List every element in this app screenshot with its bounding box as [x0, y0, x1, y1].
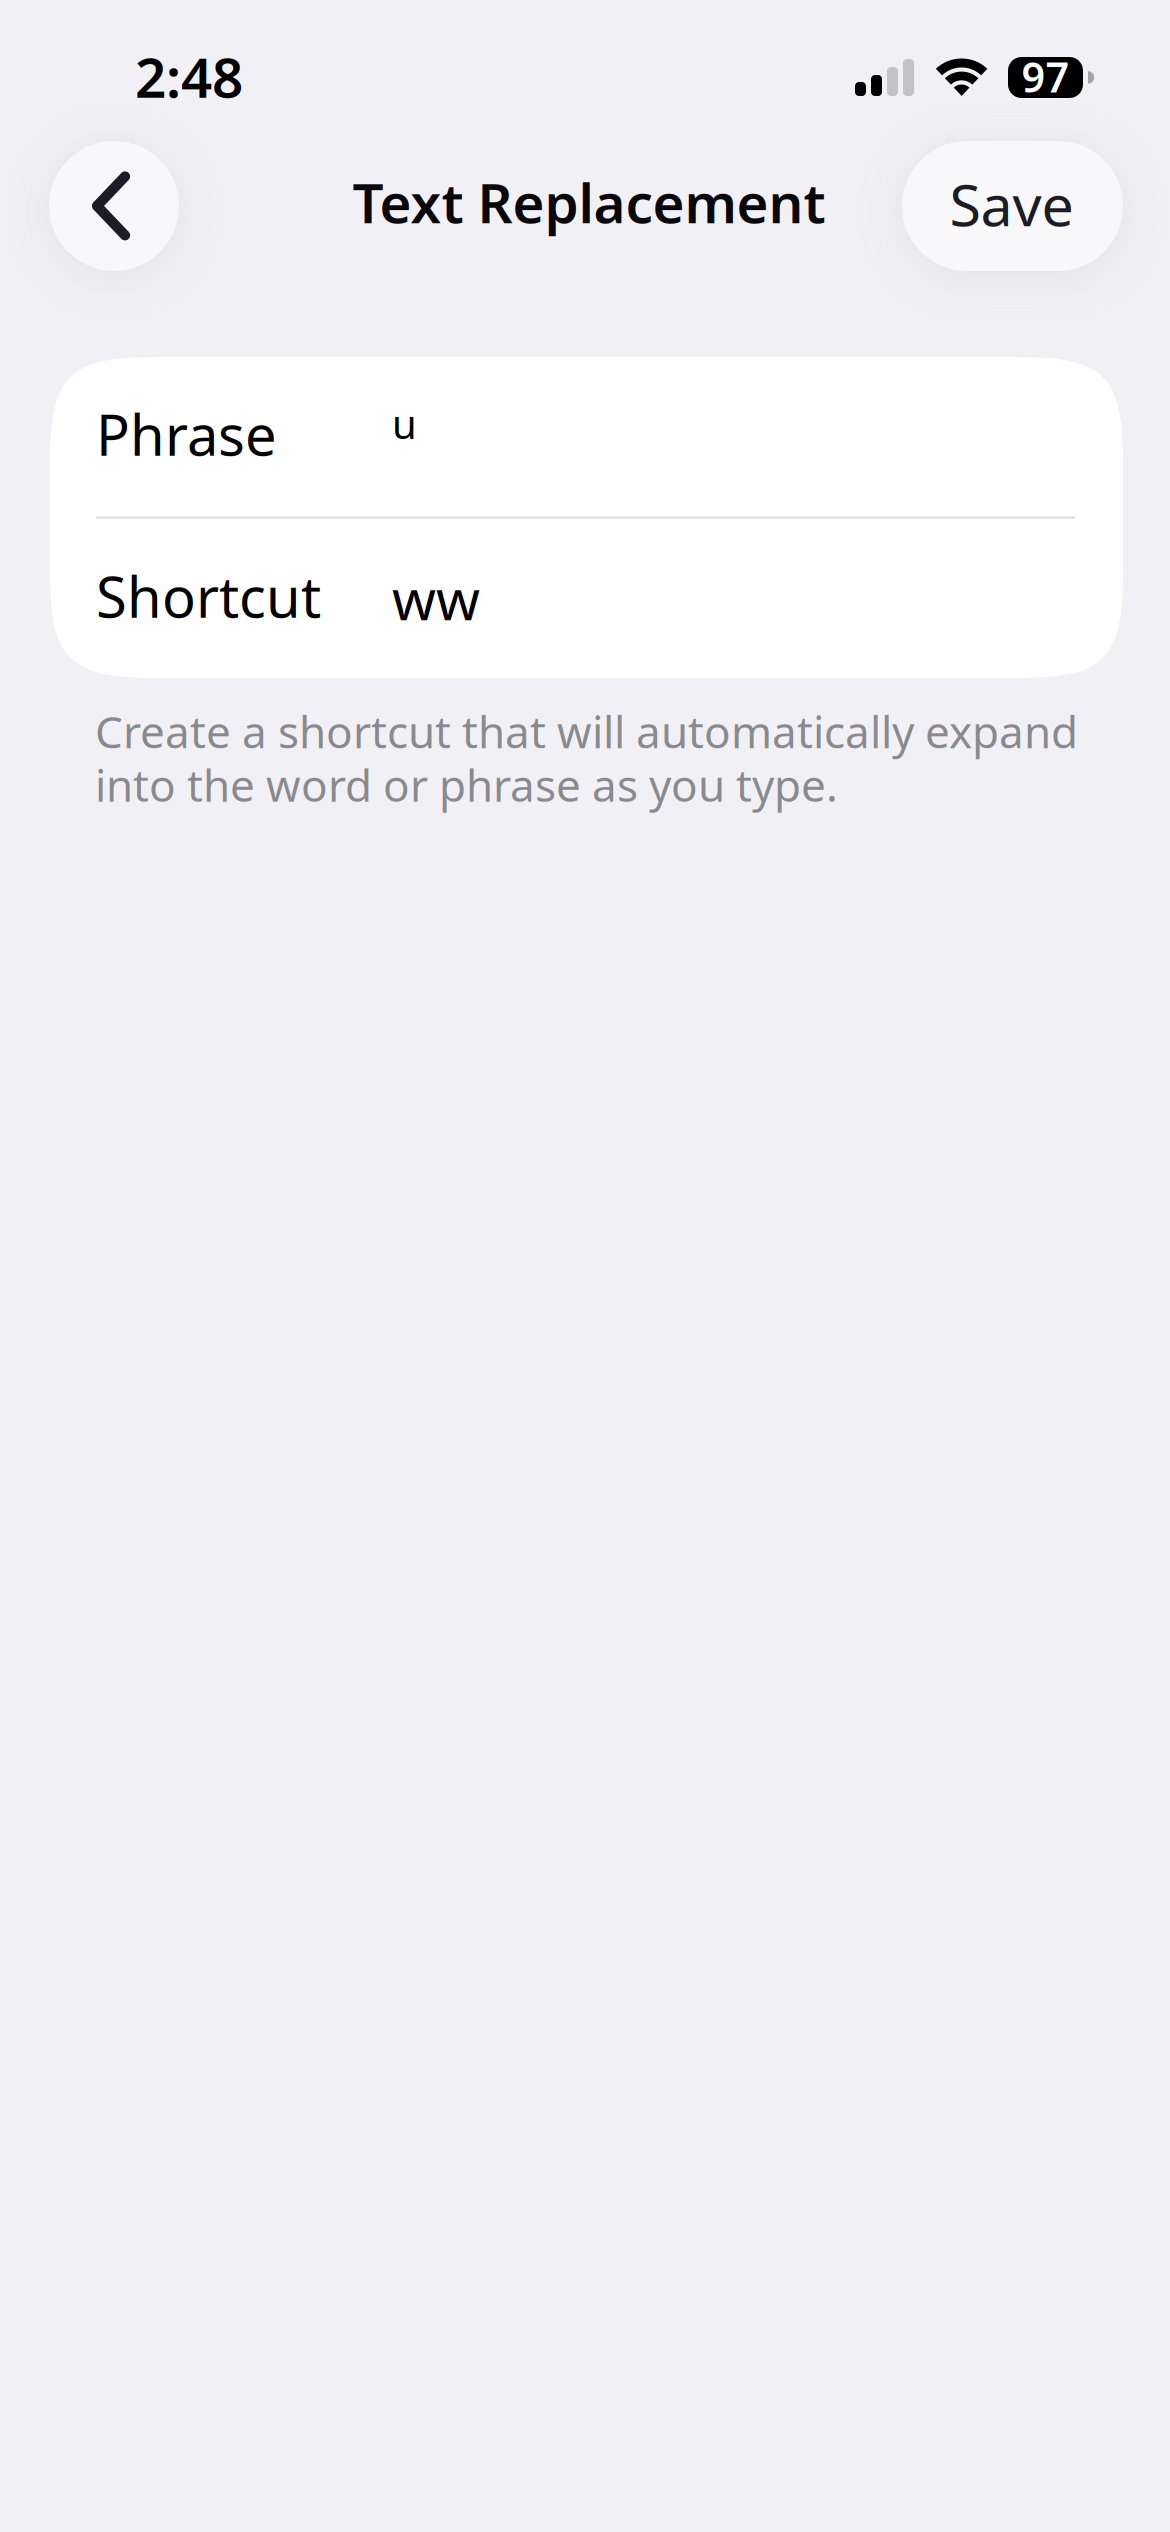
button[interactable]: Back: [49, 141, 179, 271]
button[interactable]: Phrase: [50, 357, 1123, 516]
staticText: Text Replacement: [352, 166, 825, 238]
staticText: 2:48: [135, 40, 243, 113]
staticText: Create a shortcut that will automaticall…: [95, 702, 1078, 760]
button[interactable]: Shortcut: [50, 519, 1123, 678]
staticText: into the word or phrase as you type.: [95, 755, 838, 814]
staticText: 97: [1021, 49, 1069, 104]
button[interactable]: Save: [902, 141, 1123, 271]
staticText: Shortcut: [96, 559, 321, 633]
staticText: Save: [949, 166, 1073, 242]
staticText: ww: [392, 561, 480, 636]
staticText: u: [392, 397, 417, 450]
staticText: Phrase: [96, 397, 277, 471]
